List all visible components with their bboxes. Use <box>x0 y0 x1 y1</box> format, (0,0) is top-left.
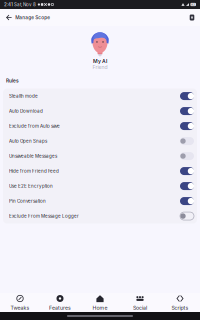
button[interactable]: Use E2E Encryption <box>3 179 197 194</box>
button[interactable]: Back <box>2 10 15 24</box>
button[interactable]: Unsaveable Messages <box>3 149 197 164</box>
staticText: 2:41 <box>4 2 13 7</box>
button[interactable]: Hide from Friend Feed <box>3 164 197 179</box>
staticText: My AI <box>93 58 107 64</box>
button[interactable]: Social <box>120 290 160 315</box>
staticText: Tweaks <box>10 305 29 311</box>
staticText: Friend <box>92 64 107 70</box>
staticText: Rules <box>6 78 19 84</box>
button[interactable]: Save <box>186 11 198 24</box>
staticText: 82 <box>191 3 195 6</box>
button[interactable]: Home <box>80 290 120 315</box>
staticText: Scripts <box>171 305 188 311</box>
staticText: Exclude From Message Logger <box>9 213 79 219</box>
button[interactable]: Exclude From Message Logger <box>3 209 197 224</box>
staticText: Manage Scope <box>15 15 50 20</box>
staticText: Sat, Nov 8 <box>13 2 36 7</box>
staticText: Exclude from Auto save <box>9 123 60 129</box>
staticText: Features <box>49 305 71 311</box>
button[interactable]: Tweaks <box>0 290 40 315</box>
staticText: Stealth mode <box>9 93 38 99</box>
staticText: Unsaveable Messages <box>9 153 57 159</box>
button[interactable]: Scripts <box>160 290 200 315</box>
staticText: Hide from Friend Feed <box>9 168 59 174</box>
staticText: Auto Open Snaps <box>9 138 47 144</box>
button[interactable]: Auto Open Snaps <box>3 134 197 149</box>
button[interactable]: Exclude from Auto save <box>3 119 197 134</box>
staticText: Use E2E Encryption <box>9 183 53 189</box>
button[interactable]: Features <box>40 290 80 315</box>
staticText: Auto Download <box>9 108 43 114</box>
staticText: Home <box>92 305 107 311</box>
button[interactable]: Pin Conversation <box>3 194 197 209</box>
staticText: Social <box>133 305 147 311</box>
button[interactable]: Auto Download <box>3 104 197 119</box>
staticText: Pin Conversation <box>9 198 46 204</box>
button[interactable]: Stealth mode <box>3 89 197 104</box>
